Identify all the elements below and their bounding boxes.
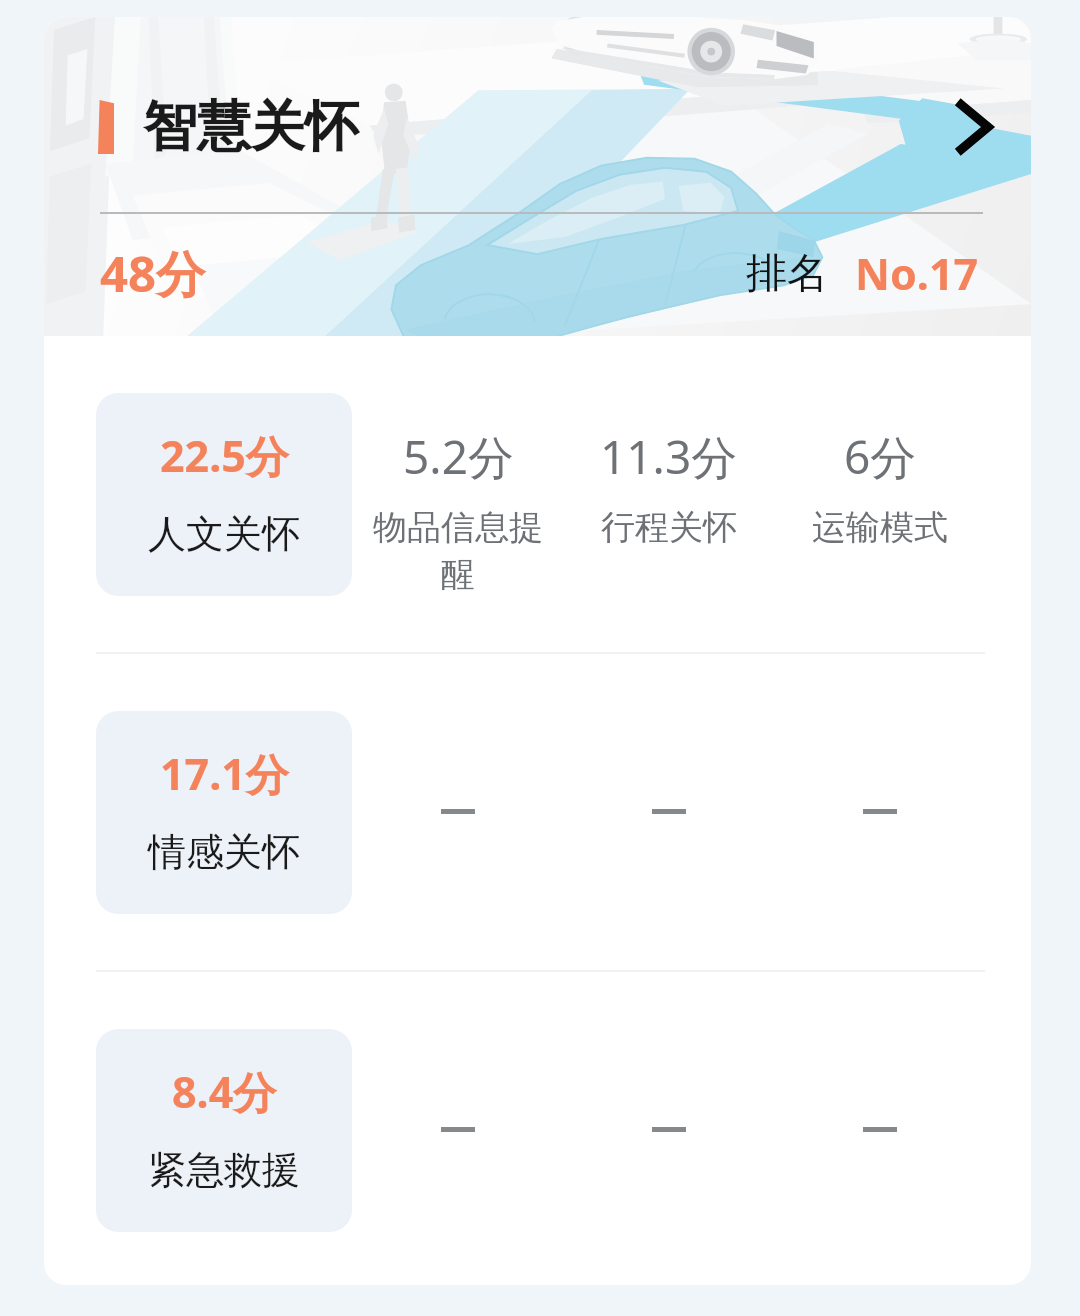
button[interactable]: 17.1分 bbox=[96, 711, 352, 914]
staticText: No.17 bbox=[855, 244, 979, 303]
button[interactable] bbox=[563, 972, 774, 1285]
staticText: 6分 bbox=[844, 425, 917, 488]
button[interactable] bbox=[563, 654, 774, 970]
button[interactable]: 5.2分 bbox=[352, 336, 563, 652]
staticText: 紧急救援 bbox=[148, 1146, 300, 1194]
staticText: 情感关怀 bbox=[148, 828, 300, 876]
button[interactable]: 智慧关怀 bbox=[44, 17, 1031, 336]
button[interactable]: 6分 bbox=[774, 336, 985, 652]
button[interactable] bbox=[352, 654, 563, 970]
button[interactable]: 11.3分 bbox=[563, 336, 774, 652]
staticText: 5.2分 bbox=[403, 425, 514, 488]
button[interactable] bbox=[774, 972, 985, 1285]
button[interactable]: 22.5分 bbox=[96, 393, 352, 596]
button[interactable]: 8.4分 bbox=[96, 1029, 352, 1232]
staticText: 48分 bbox=[100, 240, 206, 307]
staticText: 运输模式 bbox=[794, 506, 966, 549]
staticText: 22.5分 bbox=[160, 426, 289, 485]
staticText: 物品信息提醒 bbox=[372, 506, 544, 596]
staticText: 智慧关怀 bbox=[143, 93, 359, 161]
other: 查看详情 bbox=[958, 101, 990, 153]
staticText: 11.3分 bbox=[600, 425, 738, 488]
staticText: 排名 bbox=[746, 248, 828, 300]
button[interactable] bbox=[774, 654, 985, 970]
button[interactable] bbox=[352, 972, 563, 1285]
staticText: 8.4分 bbox=[172, 1062, 277, 1121]
staticText: 人文关怀 bbox=[148, 510, 300, 558]
staticText: 行程关怀 bbox=[583, 506, 755, 549]
staticText: 17.1分 bbox=[160, 744, 289, 803]
